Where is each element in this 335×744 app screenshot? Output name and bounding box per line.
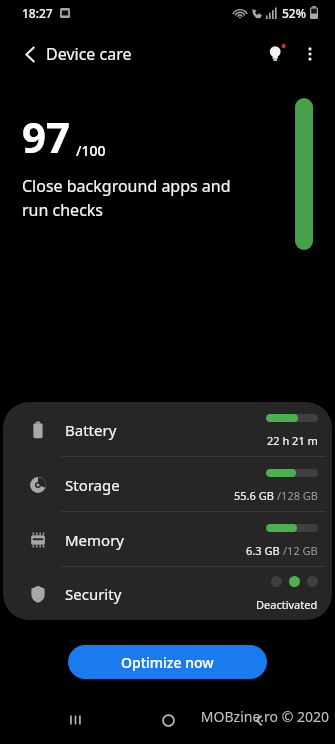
- staticText: Battery: [65, 420, 117, 440]
- staticText: Optimize now: [121, 653, 214, 672]
- staticText: 6.3 GB: [246, 543, 283, 558]
- button[interactable]: Battery: [3, 402, 332, 457]
- staticText: /128 GB: [277, 488, 318, 503]
- button[interactable]: Recents: [54, 698, 98, 742]
- staticText: Security: [65, 584, 122, 604]
- button[interactable]: Memory: [3, 512, 332, 567]
- staticText: /12 GB: [283, 543, 318, 558]
- button[interactable]: Tips: [255, 33, 297, 75]
- staticText: Device care: [46, 43, 132, 65]
- staticText: /100: [76, 141, 106, 160]
- button[interactable]: Optimize now: [68, 645, 267, 679]
- staticText: 22 h 21 m: [267, 433, 318, 448]
- staticText: 52%: [282, 5, 306, 21]
- staticText: 55.6 GB: [234, 488, 277, 503]
- button[interactable]: Security: [3, 567, 332, 620]
- button[interactable]: More options: [289, 33, 331, 75]
- staticText: Storage: [65, 475, 120, 495]
- staticText: MOBzine.ro © 2020: [200, 707, 329, 726]
- staticText: Deactivated: [256, 597, 318, 612]
- button[interactable]: Storage: [3, 457, 332, 512]
- staticText: 18:27: [22, 5, 53, 21]
- button[interactable]: Home: [146, 698, 190, 742]
- staticText: Close background apps and run checks: [22, 175, 231, 221]
- staticText: Memory: [65, 530, 125, 550]
- button[interactable]: Back: [237, 698, 281, 742]
- button[interactable]: Back: [8, 32, 52, 76]
- staticText: 97: [22, 108, 71, 165]
